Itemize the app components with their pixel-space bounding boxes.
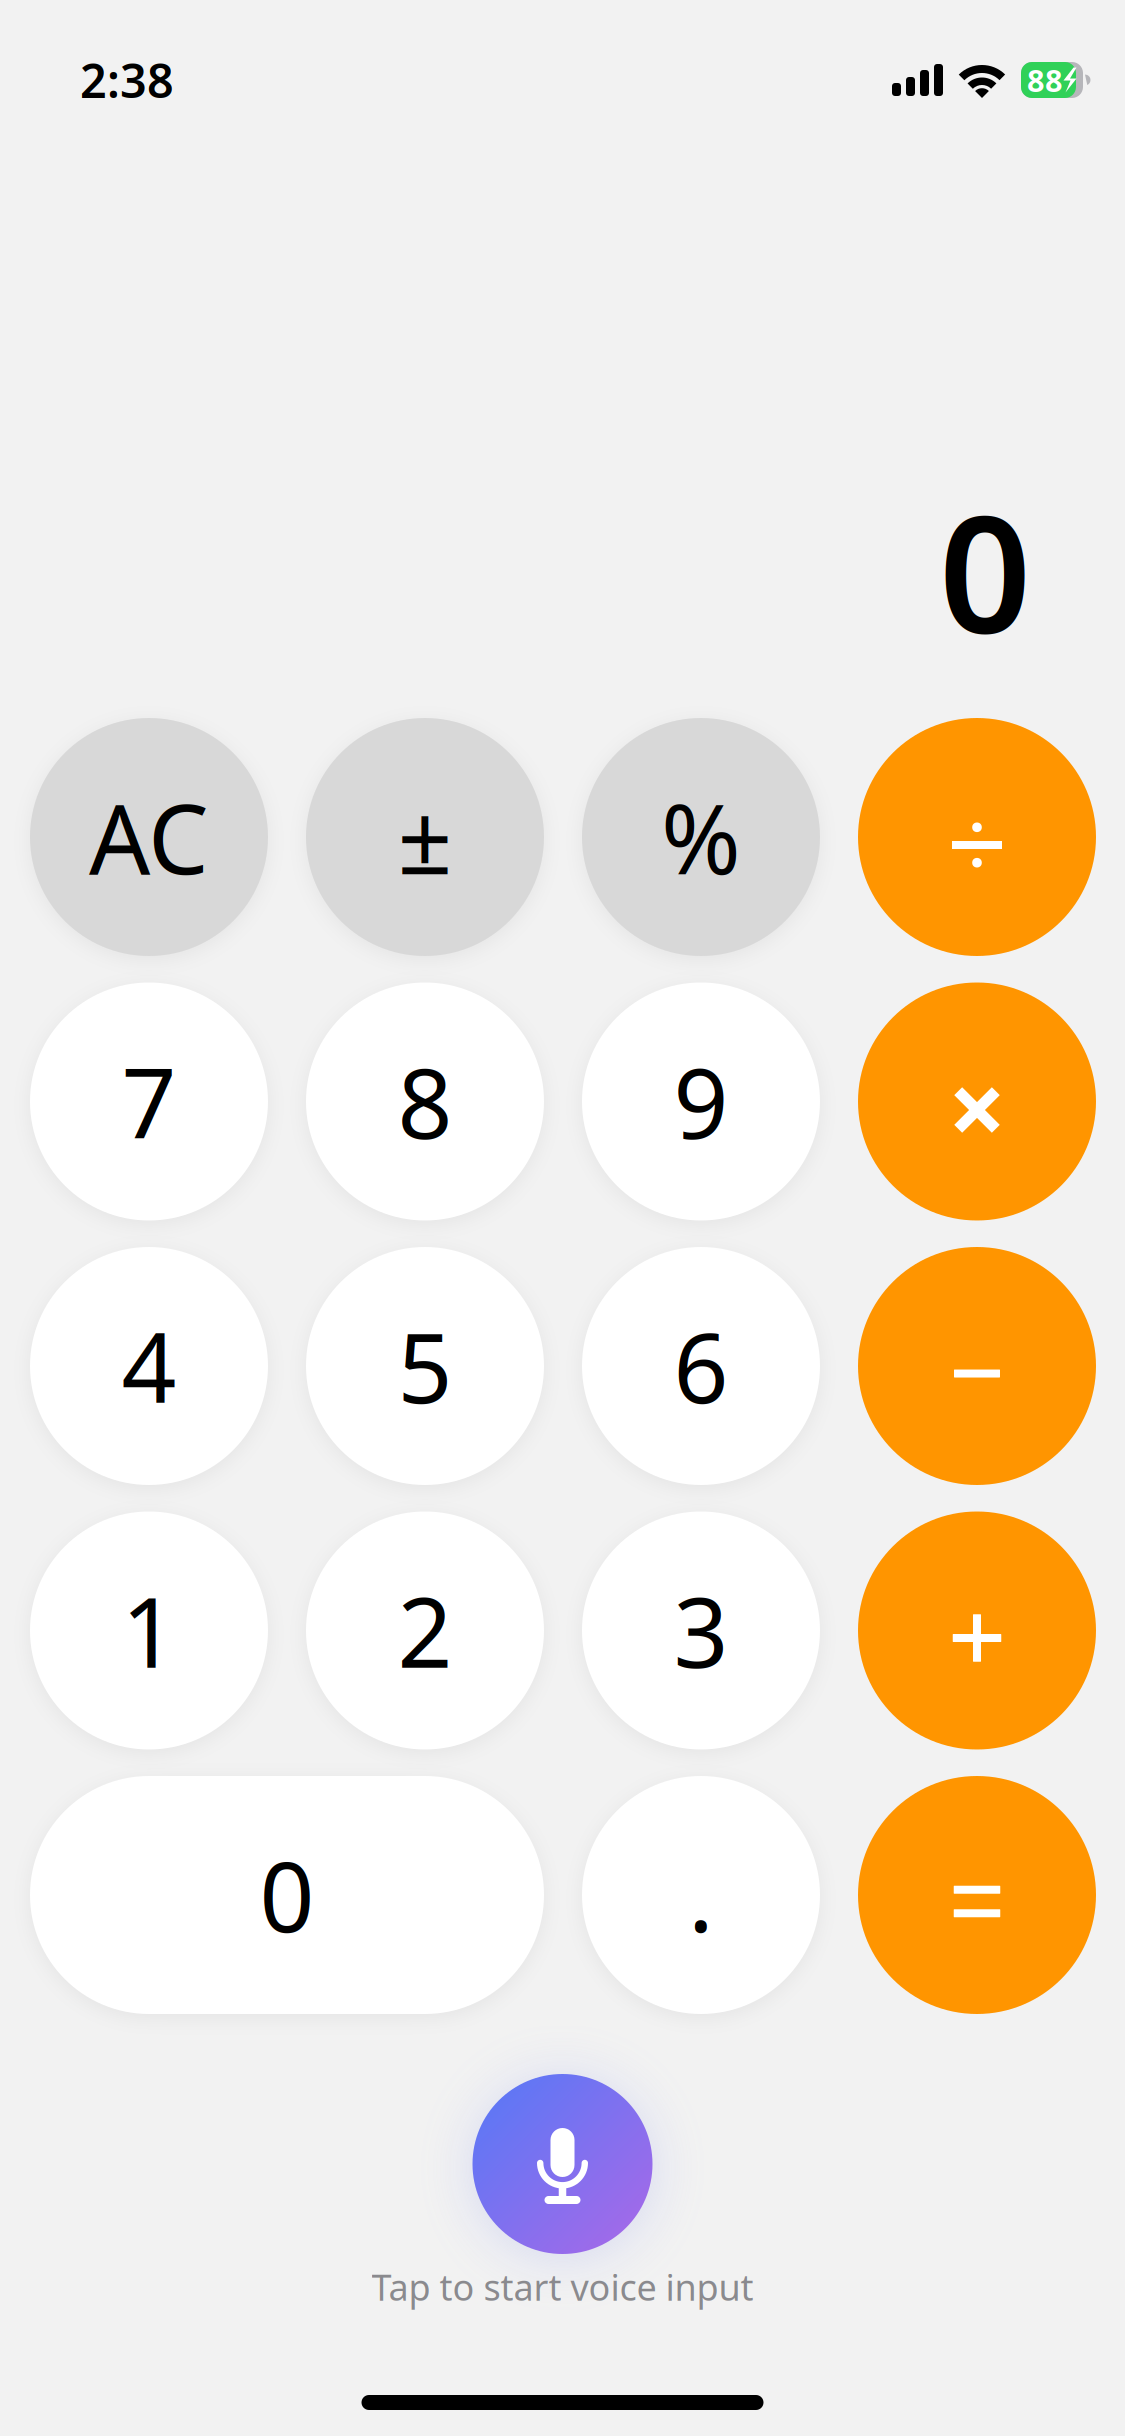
staticText: ± — [397, 773, 452, 901]
button[interactable]: 2 — [306, 1511, 544, 1749]
button[interactable]: ± — [306, 718, 544, 956]
button[interactable] — [858, 718, 1096, 956]
staticText: 2 — [397, 1567, 452, 1694]
button[interactable] — [858, 1776, 1096, 2014]
staticText: Tap to start voice input — [371, 2263, 753, 2311]
button[interactable]: 9 — [582, 982, 820, 1220]
button[interactable]: 3 — [582, 1511, 820, 1749]
staticText: . — [688, 1831, 714, 1959]
staticText: 88 — [1027, 60, 1063, 100]
button[interactable]: 4 — [30, 1247, 268, 1485]
staticText: 0 — [939, 463, 1031, 677]
button[interactable]: 0 — [30, 1776, 544, 2014]
staticText: 3 — [673, 1567, 728, 1694]
button[interactable]: 7 — [30, 982, 268, 1220]
button[interactable] — [858, 1511, 1096, 1749]
button[interactable]: % — [582, 718, 820, 956]
button[interactable]: 6 — [582, 1247, 820, 1485]
staticText: 1 — [121, 1567, 176, 1694]
button[interactable]: . — [582, 1776, 820, 2014]
staticText: AC — [89, 773, 209, 901]
button[interactable] — [858, 982, 1096, 1220]
staticText: 7 — [121, 1038, 176, 1165]
button[interactable]: AC — [30, 718, 268, 956]
button[interactable]: 5 — [306, 1247, 544, 1485]
button[interactable]: Start voice input — [472, 2074, 652, 2254]
button[interactable]: 8 — [306, 982, 544, 1220]
button[interactable]: 1 — [30, 1511, 268, 1749]
staticText: 2:38 — [80, 49, 174, 111]
staticText: % — [661, 773, 741, 901]
button[interactable] — [858, 1247, 1096, 1485]
staticText: 5 — [397, 1302, 452, 1430]
staticText: 0 — [259, 1831, 314, 1959]
staticText: 6 — [673, 1302, 728, 1430]
staticText: 8 — [397, 1038, 452, 1165]
staticText: 4 — [121, 1302, 176, 1430]
staticText: 9 — [673, 1038, 728, 1165]
